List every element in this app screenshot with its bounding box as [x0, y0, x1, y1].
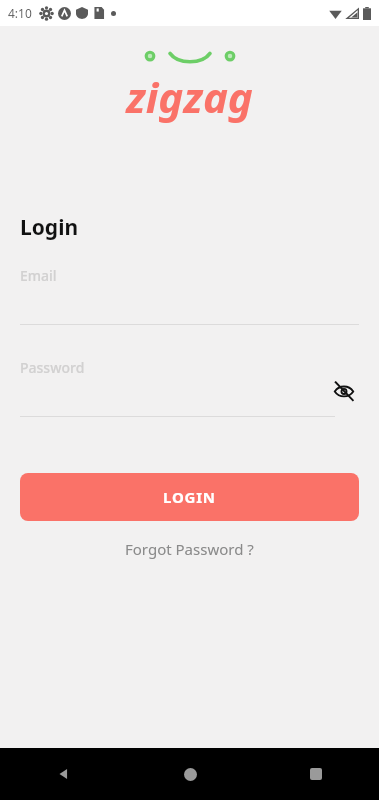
staticText: 4:10 — [8, 5, 32, 21]
staticText: Forgot Password ? — [125, 539, 254, 559]
staticText: zigzag — [126, 68, 253, 125]
button[interactable]: Recents — [253, 748, 379, 800]
staticText: LOGIN — [163, 487, 216, 507]
staticText: Login — [20, 213, 79, 242]
button[interactable]: Toggle password visibility — [329, 376, 359, 406]
staticText: Password — [20, 358, 85, 377]
staticText: Email — [20, 266, 57, 285]
button[interactable]: Email — [20, 266, 359, 325]
button[interactable]: Back — [0, 748, 127, 800]
button[interactable]: Forgot Password ? — [117, 535, 262, 563]
button[interactable]: Password — [20, 358, 359, 417]
button[interactable]: Home — [127, 748, 253, 800]
button[interactable]: LOGIN — [20, 473, 359, 521]
